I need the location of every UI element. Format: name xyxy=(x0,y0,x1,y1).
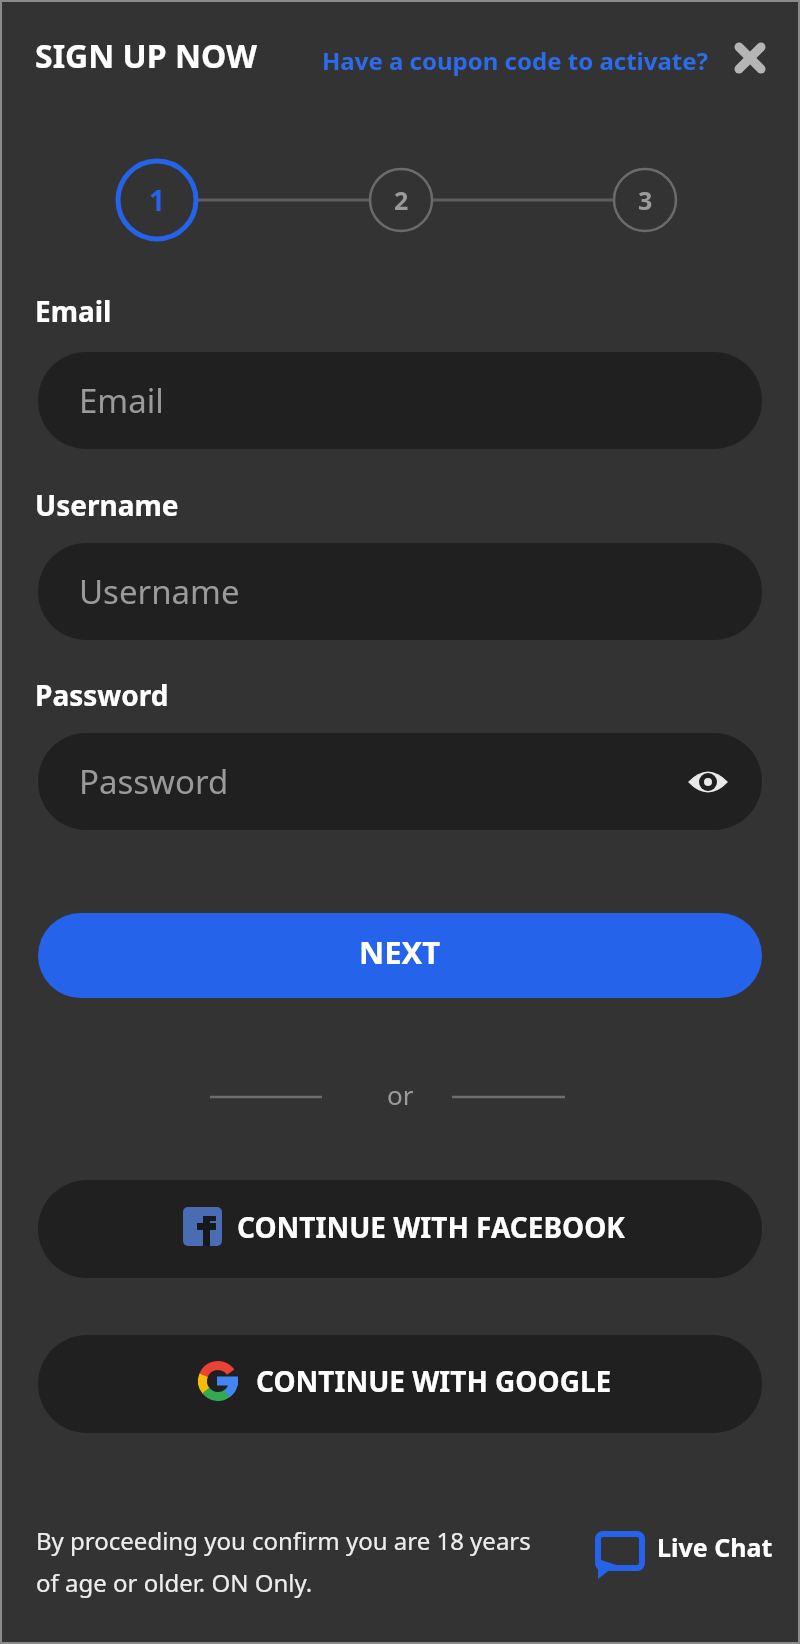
staticText: 3 xyxy=(638,183,653,217)
button[interactable]: Have a coupon code to activate? xyxy=(322,44,709,77)
button[interactable] xyxy=(730,38,770,78)
staticText: SIGN UP NOW xyxy=(35,34,257,78)
button[interactable]: CONTINUE WITH GOOGLE xyxy=(38,1335,762,1433)
staticText: CONTINUE WITH FACEBOOK xyxy=(237,1208,625,1246)
staticText: NEXT xyxy=(359,931,441,973)
staticText: 1 xyxy=(149,181,166,219)
staticText: CONTINUE WITH GOOGLE xyxy=(256,1362,612,1400)
staticText: Email xyxy=(79,378,164,423)
button[interactable] xyxy=(590,1524,638,1572)
staticText: Live Chat xyxy=(657,1530,773,1564)
staticText: or xyxy=(387,1077,414,1112)
button[interactable]: Username xyxy=(38,543,762,640)
staticText: By proceeding you confirm you are 18 yea… xyxy=(36,1524,531,1599)
staticText: Email xyxy=(35,292,112,330)
button[interactable]: Password xyxy=(38,733,762,830)
staticText: Password xyxy=(79,759,229,804)
staticText: Username xyxy=(79,569,240,614)
button[interactable]: NEXT xyxy=(38,913,762,998)
staticText: Have a coupon code to activate? xyxy=(322,44,709,77)
staticText: Username xyxy=(35,486,179,524)
button[interactable]: CONTINUE WITH FACEBOOK xyxy=(38,1180,762,1278)
button[interactable]: Email xyxy=(38,352,762,449)
staticText: 2 xyxy=(394,183,409,217)
staticText: Password xyxy=(35,676,169,714)
